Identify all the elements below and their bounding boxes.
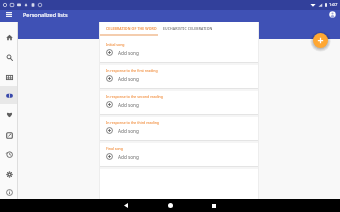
button[interactable]: EUCHARISTIC CELEBRATION	[161, 21, 215, 35]
button[interactable]: Browse	[0, 68, 18, 86]
staticText: In response to the first reading	[106, 68, 158, 73]
button[interactable]: Final song	[99, 143, 259, 166]
button[interactable]: Settings	[0, 165, 18, 183]
staticText: Add song	[118, 50, 139, 56]
staticText: CELEBRATION OF THE WORD	[106, 26, 157, 31]
button[interactable]: Add	[313, 33, 328, 48]
button[interactable]: CELEBRATION OF THE WORD	[104, 21, 159, 35]
button[interactable]: Home	[162, 199, 178, 212]
button[interactable]: Account	[324, 9, 340, 20]
staticText: Personalized lists	[23, 11, 68, 18]
button[interactable]: In response to the second reading	[99, 91, 259, 114]
staticText: EUCHARISTIC CELEBRATION	[163, 26, 213, 31]
staticText: Add song	[118, 154, 139, 160]
button[interactable]: Notes	[0, 126, 18, 144]
button[interactable]: Recent apps	[206, 199, 222, 212]
button[interactable]: Favorites	[0, 105, 18, 123]
staticText: 1:07	[329, 2, 338, 8]
staticText: In response to the second reading	[106, 94, 163, 99]
button[interactable]: History	[0, 145, 18, 163]
staticText: Add song	[118, 76, 139, 82]
button[interactable]: Initial song	[99, 39, 259, 62]
staticText: Final song	[106, 146, 123, 151]
staticText: Add song	[118, 102, 139, 108]
staticText: Initial song	[106, 42, 125, 47]
button[interactable]: Search	[0, 48, 18, 66]
button[interactable]: In response to the first reading	[99, 65, 259, 88]
button[interactable]: Home	[0, 28, 18, 46]
button[interactable]: About	[0, 183, 18, 201]
button[interactable]: My lists	[0, 86, 18, 104]
button[interactable]: In response to the third reading	[99, 117, 259, 140]
staticText: Add song	[118, 128, 139, 134]
button[interactable]: Back	[118, 199, 134, 212]
button[interactable]: Open navigation drawer	[0, 9, 18, 20]
staticText: In response to the third reading	[106, 120, 160, 125]
